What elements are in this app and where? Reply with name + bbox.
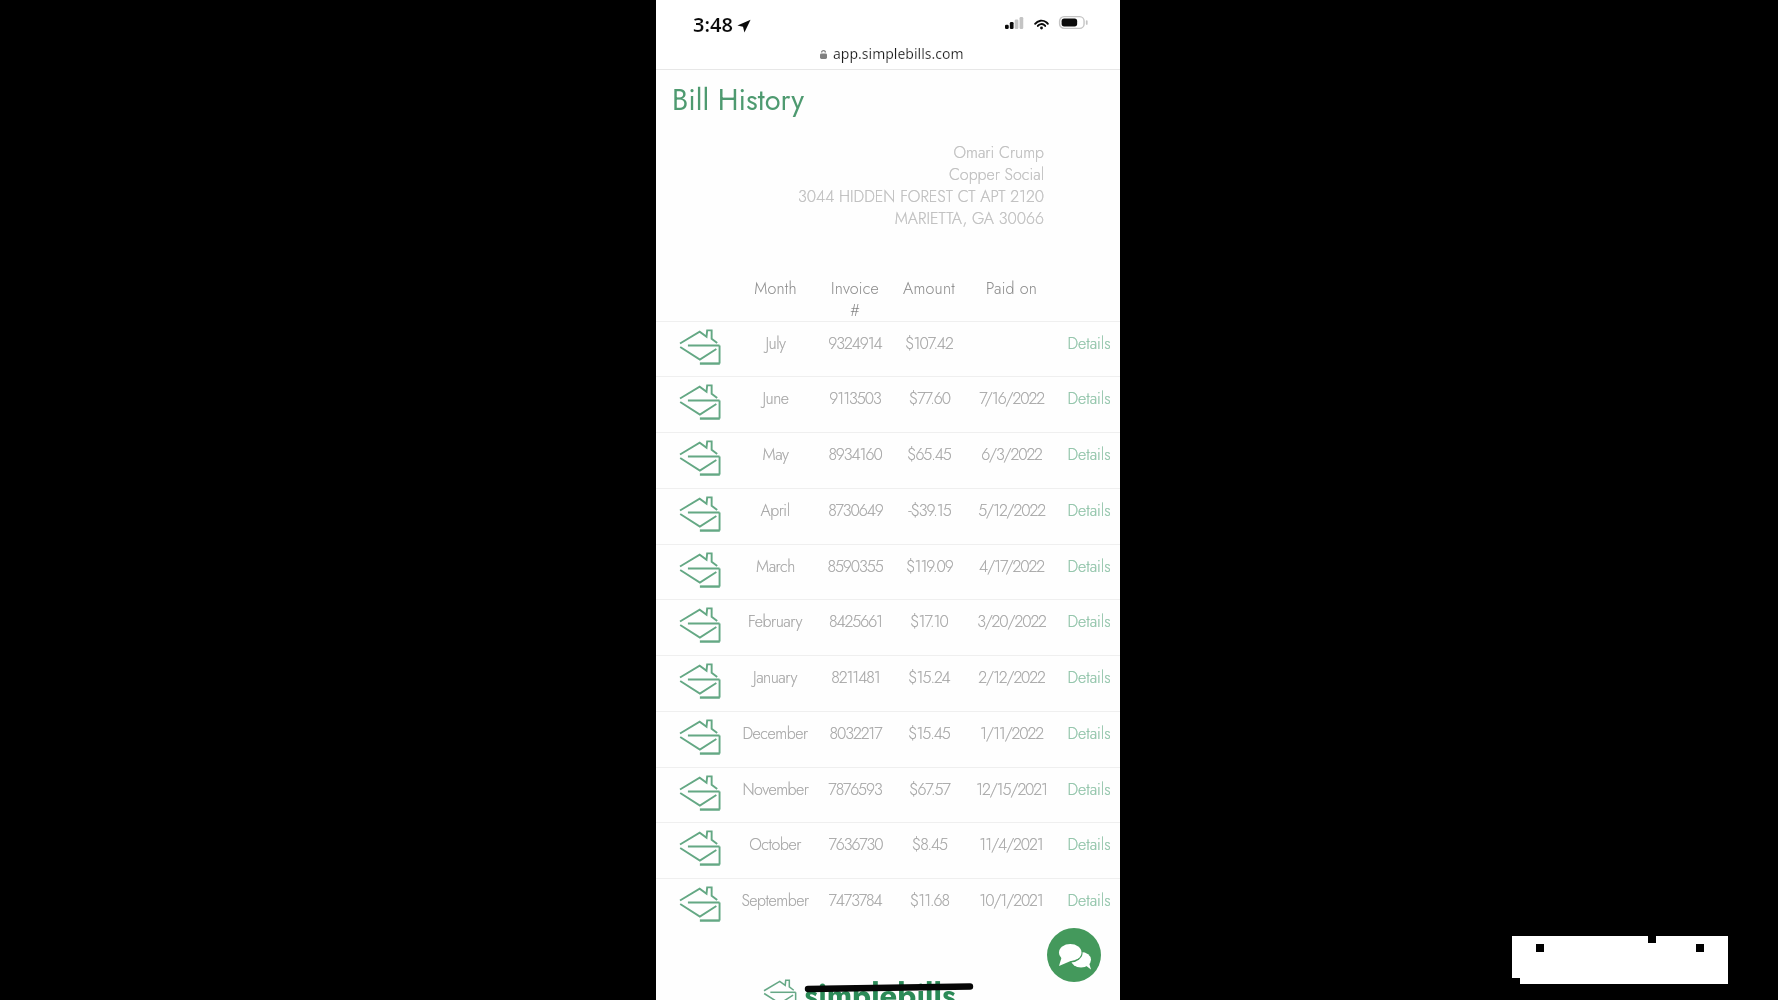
staticText: simplebills <box>804 973 956 1000</box>
staticText: 3044 HIDDEN FOREST CT APT 2120 <box>797 185 1044 208</box>
button[interactable]: May <box>656 432 1120 488</box>
staticText: 9324914 <box>828 332 882 355</box>
staticText: $17.10 <box>910 610 948 633</box>
button[interactable]: November <box>656 767 1120 823</box>
staticText: June <box>762 387 789 410</box>
staticText: $8.45 <box>912 833 947 856</box>
staticText: $107.42 <box>905 332 953 355</box>
staticText: 8934160 <box>828 443 882 466</box>
button[interactable]: June <box>656 376 1120 432</box>
button[interactable]: Details <box>1049 432 1129 488</box>
staticText: Details <box>1067 833 1111 856</box>
button[interactable]: September <box>656 878 1120 934</box>
button[interactable]: Details <box>1049 376 1129 432</box>
staticText: 7876593 <box>828 778 882 801</box>
staticText: Paid on <box>986 277 1037 300</box>
staticText: 6/3/2022 <box>981 443 1042 466</box>
staticText: Details <box>1067 332 1111 355</box>
staticText: $77.60 <box>909 387 950 410</box>
button[interactable]: Details <box>1049 822 1129 878</box>
staticText: $67.57 <box>909 778 950 801</box>
staticText: 11/4/2021 <box>979 833 1043 856</box>
button[interactable]: Details <box>1049 878 1129 934</box>
staticText: Details <box>1067 778 1111 801</box>
staticText: 8032217 <box>829 722 882 745</box>
staticText: Omari Crump <box>953 141 1044 164</box>
staticText: 8425661 <box>829 610 882 633</box>
button[interactable]: Details <box>1049 655 1129 711</box>
staticText: 8211481 <box>831 666 880 689</box>
staticText: 10/1/2021 <box>979 889 1043 912</box>
button[interactable]: Details <box>1049 599 1129 655</box>
staticText: January <box>753 666 797 689</box>
staticText: 7636730 <box>828 833 883 856</box>
staticText: Details <box>1067 722 1111 745</box>
staticText: Month <box>754 277 797 300</box>
button[interactable]: July <box>656 321 1120 377</box>
button[interactable]: March <box>656 544 1120 600</box>
button[interactable]: Details <box>1049 321 1129 377</box>
staticText: 2/12/2022 <box>978 666 1045 689</box>
staticText: October <box>749 833 801 856</box>
staticText: $15.24 <box>908 666 950 689</box>
staticText: December <box>742 722 808 745</box>
staticText: Details <box>1067 610 1111 633</box>
staticText: # <box>850 299 860 322</box>
staticText: -$39.15 <box>908 499 951 522</box>
staticText: $11.68 <box>910 889 949 912</box>
button[interactable]: January <box>656 655 1120 711</box>
staticText: Details <box>1067 555 1111 578</box>
staticText: app.simplebills.com <box>833 44 964 63</box>
staticText: MARIETTA, GA 30066 <box>894 207 1044 230</box>
staticText: $119.09 <box>906 555 953 578</box>
staticText: July <box>765 332 786 355</box>
button[interactable]: October <box>656 822 1120 878</box>
button[interactable]: Details <box>1049 711 1129 767</box>
button[interactable]: Details <box>1049 488 1129 544</box>
button[interactable]: April <box>656 488 1120 544</box>
staticText: March <box>756 555 795 578</box>
button[interactable]: Details <box>1049 767 1129 823</box>
staticText: Details <box>1067 499 1111 522</box>
staticText: 1/11/2022 <box>980 722 1043 745</box>
staticText: April <box>760 499 790 522</box>
staticText: Invoice <box>831 277 879 300</box>
staticText: Details <box>1067 387 1111 410</box>
staticText: Details <box>1067 666 1111 689</box>
staticText: 3/20/2022 <box>977 610 1046 633</box>
staticText: Amount <box>903 277 955 300</box>
button[interactable]: Open chat <box>1047 928 1101 982</box>
staticText: Details <box>1067 443 1111 466</box>
staticText: 9113503 <box>829 387 881 410</box>
staticText: 7/16/2022 <box>979 387 1044 410</box>
staticText: $65.45 <box>907 443 951 466</box>
staticText: Details <box>1067 889 1111 912</box>
staticText: 8590355 <box>827 555 883 578</box>
staticText: 12/15/2021 <box>976 778 1047 801</box>
staticText: November <box>742 778 809 801</box>
staticText: 3:48 <box>693 11 733 38</box>
button[interactable]: December <box>656 711 1120 767</box>
staticText: 4/17/2022 <box>979 555 1044 578</box>
button[interactable]: Details <box>1049 544 1129 600</box>
button[interactable]: February <box>656 599 1120 655</box>
staticText: $15.45 <box>908 722 950 745</box>
staticText: 8730649 <box>828 499 883 522</box>
staticText: 5/12/2022 <box>978 499 1045 522</box>
staticText: September <box>741 889 809 912</box>
staticText: May <box>762 443 789 466</box>
staticText: 7473784 <box>828 889 882 912</box>
staticText: Copper Social <box>948 163 1044 186</box>
staticText: Bill History <box>672 79 805 121</box>
staticText: February <box>748 610 802 633</box>
